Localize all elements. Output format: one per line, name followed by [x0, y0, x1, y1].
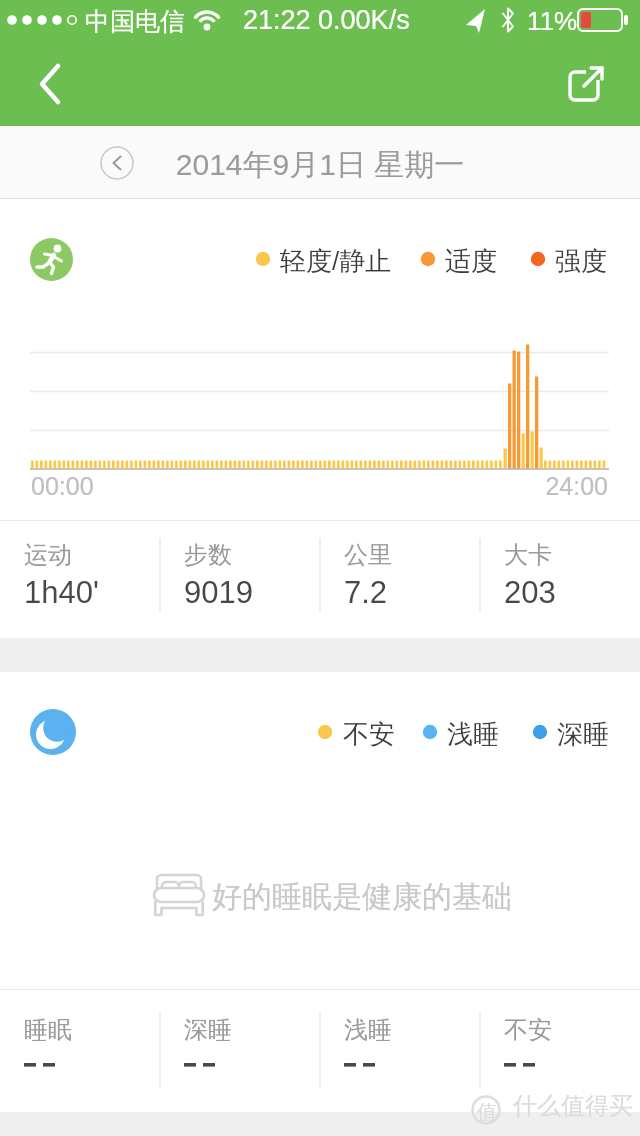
- button[interactable]: [320, 525, 480, 630]
- staticText: 大卡: [504, 540, 552, 570]
- button[interactable]: [0, 995, 160, 1112]
- staticText: 什么值得买: [513, 1091, 633, 1121]
- staticText: 不安: [504, 1015, 552, 1045]
- staticText: 运动: [24, 540, 72, 570]
- staticText: 值: [477, 1100, 497, 1125]
- staticText: 11%: [527, 6, 578, 35]
- button[interactable]: [480, 525, 640, 630]
- staticText: 深睡: [557, 718, 609, 751]
- button[interactable]: [480, 995, 640, 1112]
- staticText: 9019: [184, 575, 253, 610]
- button[interactable]: [20, 56, 76, 112]
- staticText: 深睡: [184, 1015, 232, 1045]
- button[interactable]: [160, 525, 320, 630]
- staticText: 好的睡眠是健康的基础: [212, 878, 512, 916]
- staticText: 不安: [343, 718, 395, 751]
- staticText: 1h40': [24, 575, 99, 610]
- staticText: 睡眠: [24, 1015, 72, 1045]
- button[interactable]: [0, 525, 160, 630]
- staticText: 00:00: [31, 472, 94, 500]
- button[interactable]: [160, 995, 320, 1112]
- staticText: 2014年9月1日 星期一: [0, 146, 640, 184]
- staticText: 浅睡: [447, 718, 499, 751]
- staticText: 21:22 0.00K/s: [243, 5, 410, 35]
- button[interactable]: [320, 995, 480, 1112]
- staticText: 7.2: [344, 575, 388, 610]
- staticText: 强度: [555, 245, 607, 278]
- staticText: 203: [504, 575, 556, 610]
- button[interactable]: [99, 145, 135, 181]
- staticText: 轻度/静止: [280, 245, 392, 278]
- staticText: 适度: [445, 245, 497, 278]
- staticText: 中国电信: [85, 6, 185, 37]
- button[interactable]: [558, 56, 618, 112]
- staticText: 公里: [344, 540, 392, 570]
- staticText: 浅睡: [344, 1015, 392, 1045]
- staticText: 24:00: [541, 472, 608, 500]
- staticText: 步数: [184, 540, 232, 570]
